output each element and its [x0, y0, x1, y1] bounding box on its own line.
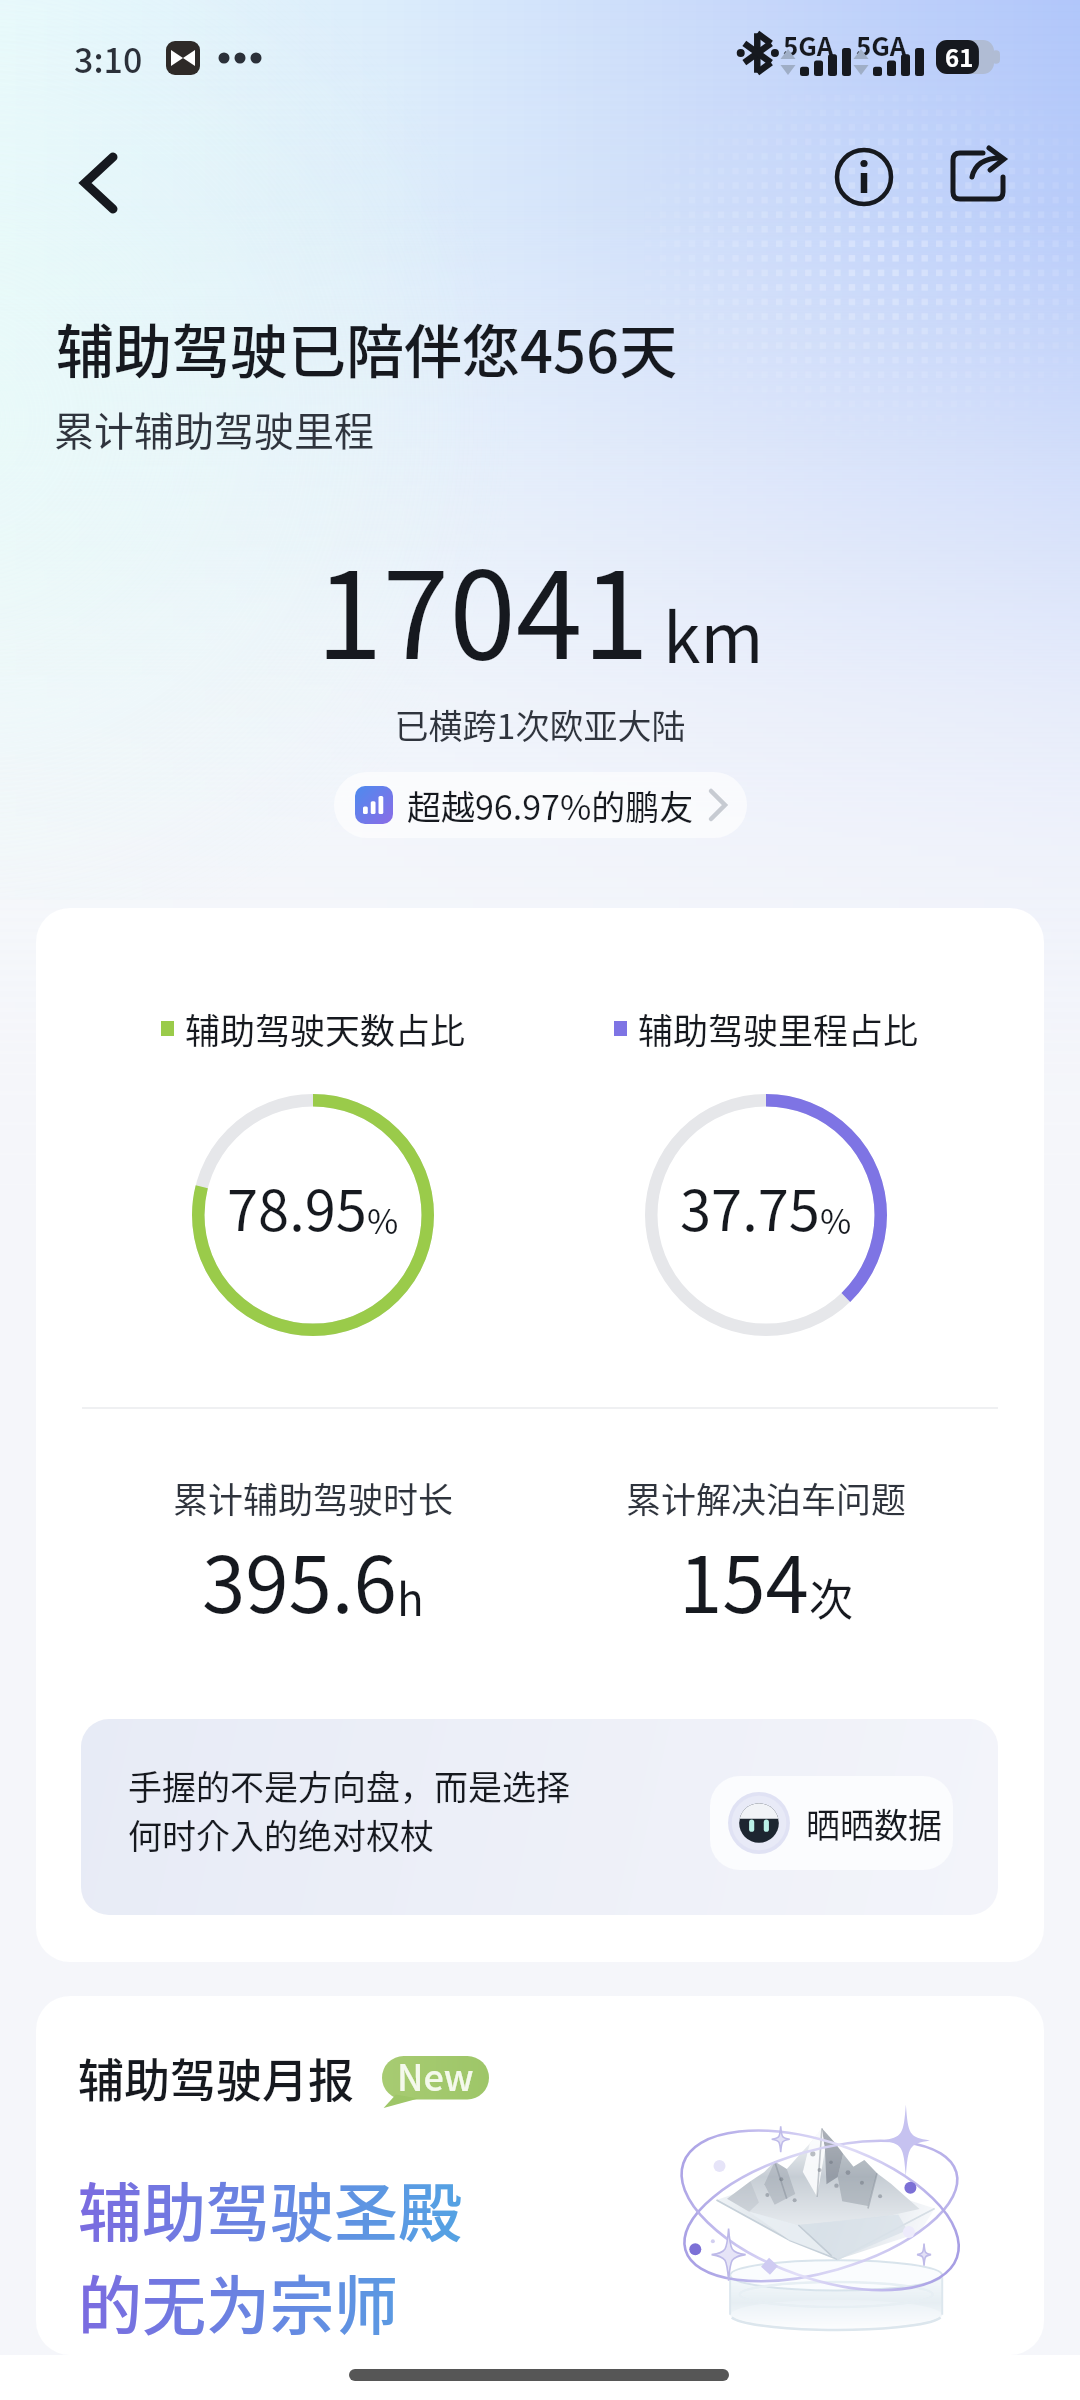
button[interactable]: 超越96.97%的鹏友: [334, 772, 747, 838]
staticText: 辅助驾驶月报: [78, 2044, 354, 2111]
staticText: 累计辅助驾驶时长: [173, 1472, 454, 1523]
button[interactable]: Share: [935, 133, 1021, 219]
staticText: 395.6: [202, 1523, 397, 1636]
staticText: 5GA: [856, 26, 907, 64]
staticText: %: [820, 1195, 852, 1244]
staticText: 17041: [316, 520, 649, 694]
staticText: New: [397, 2049, 474, 2101]
staticText: 超越96.97%的鹏友: [407, 781, 694, 830]
staticText: 累计辅助驾驶里程: [54, 400, 374, 458]
staticText: 78.95: [227, 1166, 367, 1247]
staticText: 154: [679, 1523, 809, 1636]
staticText: 何时介入的绝对权杖: [128, 1810, 434, 1859]
staticText: %: [367, 1195, 399, 1244]
staticText: 3:10: [74, 34, 143, 83]
button[interactable]: 晒晒数据: [710, 1776, 953, 1870]
button[interactable]: 辅助驾驶月报: [36, 1996, 1044, 2355]
staticText: 手握的不是方向盘，而是选择: [128, 1761, 570, 1810]
staticText: 辅助驾驶天数占比: [185, 1003, 466, 1054]
staticText: 辅助驾驶已陪伴您456天: [56, 306, 678, 390]
staticText: 的无为宗师: [78, 2255, 398, 2348]
staticText: 次: [809, 1565, 853, 1629]
staticText: 晒晒数据: [806, 1799, 942, 1848]
button[interactable]: Back: [56, 140, 142, 226]
staticText: h: [397, 1565, 424, 1629]
staticText: 已横跨1次欧亚大陆: [0, 700, 1080, 749]
staticText: 辅助驾驶圣殿: [78, 2162, 462, 2255]
staticText: 5GA: [783, 26, 834, 64]
staticText: 累计解决泊车问题: [626, 1472, 907, 1523]
staticText: km: [663, 584, 764, 682]
button[interactable]: Information: [821, 134, 907, 220]
staticText: 37.75: [680, 1166, 820, 1247]
staticText: 辅助驾驶里程占比: [638, 1003, 919, 1054]
staticText: 61: [945, 39, 974, 73]
